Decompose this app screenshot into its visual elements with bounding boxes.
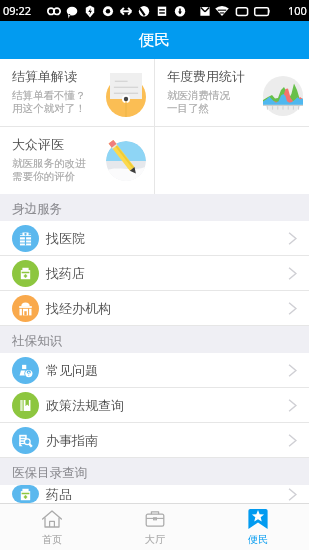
button[interactable]: 办事指南 bbox=[0, 423, 309, 458]
button[interactable]: 首页 bbox=[0, 504, 103, 550]
staticText: 大厅 bbox=[145, 533, 165, 546]
staticText: 就医消费情况 bbox=[167, 89, 230, 102]
staticText: 社保知识 bbox=[12, 333, 62, 349]
staticText: 用这个就对了！ bbox=[12, 102, 86, 115]
button[interactable]: 大厅 bbox=[103, 504, 206, 550]
staticText: 09:22 bbox=[3, 3, 32, 18]
staticText: 常见问题 bbox=[46, 362, 98, 378]
staticText: 找经办机构 bbox=[46, 300, 111, 316]
staticText: 100 bbox=[288, 3, 307, 18]
staticText: 一目了然 bbox=[167, 102, 209, 115]
staticText: 大众评医 bbox=[12, 136, 64, 152]
staticText: 药品 bbox=[46, 486, 72, 502]
staticText: 年度费用统计 bbox=[167, 68, 245, 84]
staticText: 首页 bbox=[42, 533, 62, 546]
staticText: 办事指南 bbox=[46, 432, 98, 448]
staticText: 结算单解读 bbox=[12, 68, 77, 84]
staticText: 便民 bbox=[248, 533, 268, 546]
staticText: 结算单看不懂？ bbox=[12, 89, 86, 102]
staticText: 就医服务的改进 bbox=[12, 157, 86, 170]
button[interactable]: 年度费用统计 bbox=[155, 59, 309, 126]
staticText: 政策法规查询 bbox=[46, 397, 124, 413]
button[interactable]: 找药店 bbox=[0, 256, 309, 291]
button[interactable]: 便民 bbox=[0, 21, 309, 59]
staticText: 便民 bbox=[139, 30, 170, 50]
staticText: 需要你的评价 bbox=[12, 170, 75, 183]
button[interactable]: 找经办机构 bbox=[0, 291, 309, 326]
staticText: 找医院 bbox=[46, 230, 85, 246]
staticText: 身边服务 bbox=[12, 201, 62, 217]
button[interactable]: 大众评医 bbox=[0, 127, 154, 194]
button[interactable]: 结算单解读 bbox=[0, 59, 154, 126]
staticText: 找药店 bbox=[46, 265, 85, 281]
button[interactable]: 政策法规查询 bbox=[0, 388, 309, 423]
staticText: 医保目录查询 bbox=[12, 465, 87, 481]
button[interactable]: 药品 bbox=[0, 485, 309, 503]
button[interactable]: 找医院 bbox=[0, 221, 309, 256]
button[interactable]: 便民 bbox=[206, 504, 309, 550]
button[interactable]: 常见问题 bbox=[0, 353, 309, 388]
